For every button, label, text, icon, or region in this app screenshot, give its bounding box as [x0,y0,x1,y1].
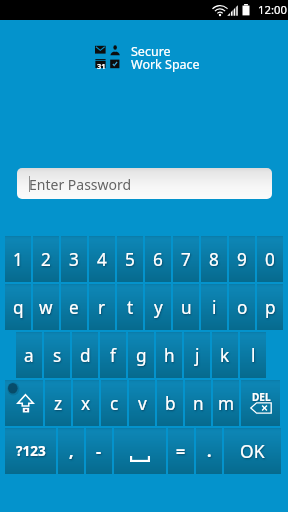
button[interactable]: 0 [257,236,283,282]
staticText: DEL [252,390,271,404]
staticText: j [195,344,200,367]
button[interactable]: r [89,284,115,330]
staticText: c [110,392,119,415]
button[interactable]: 3 [61,236,87,282]
staticText: z [54,392,63,415]
staticText: u [181,296,192,319]
staticText: 0 [265,248,275,271]
button[interactable]: l [240,332,266,378]
button[interactable]: Delete [241,380,280,426]
button[interactable]: 9 [229,236,255,282]
button[interactable]: d [72,332,98,378]
button[interactable]: e [61,284,87,330]
staticText: = [176,440,186,462]
staticText: m [218,392,235,415]
staticText: 7 [181,248,191,271]
staticText: . [207,440,212,462]
staticText: f [110,344,116,367]
button[interactable]: h [156,332,182,378]
button[interactable]: t [117,284,143,330]
staticText: 12:00 [258,2,287,17]
staticText: 3 [69,248,79,271]
staticText: 9 [237,248,247,271]
button[interactable]: 2 [33,236,59,282]
staticText: x [81,392,91,415]
staticText: 6 [153,248,163,271]
button[interactable]: f [100,332,126,378]
button[interactable]: Space [114,428,166,474]
button[interactable]: b [157,380,183,426]
button[interactable]: i [201,284,227,330]
staticText: , [69,440,74,462]
staticText: p [265,296,276,319]
staticText: s [53,344,62,367]
button[interactable]: q [5,284,31,330]
staticText: Secure [131,43,171,60]
staticText: t [127,296,134,319]
staticText: q [13,296,24,319]
staticText: Work Space [131,56,200,73]
button[interactable]: z [45,380,71,426]
button[interactable]: k [212,332,238,378]
button[interactable]: j [184,332,210,378]
staticText: ?123 [16,442,46,460]
button[interactable]: = [168,428,194,474]
button[interactable]: 7 [173,236,199,282]
staticText: 2 [41,248,51,271]
staticText: 8 [209,248,219,271]
button[interactable]: m [213,380,239,426]
staticText: d [80,344,91,367]
staticText: OK [240,439,265,463]
staticText: y [154,296,163,319]
button[interactable]: 8 [201,236,227,282]
staticText: b [165,392,176,415]
staticText: Enter Password [29,175,132,194]
staticText: 31 [97,61,106,71]
button[interactable]: 4 [89,236,115,282]
staticText: l [251,344,256,367]
button[interactable]: c [101,380,127,426]
staticText: o [237,296,248,319]
button[interactable]: - [86,428,112,474]
button[interactable]: a [16,332,42,378]
staticText: 4 [97,248,107,271]
staticText: w [39,296,53,319]
button[interactable]: g [128,332,154,378]
staticText: n [193,392,204,415]
button[interactable]: w [33,284,59,330]
button[interactable]: ?123 [5,428,56,474]
staticText: e [69,296,79,319]
staticText: r [98,296,106,319]
button[interactable]: Enter Password [17,168,272,199]
button[interactable]: 1 [5,236,31,282]
staticText: 5 [125,248,135,271]
button[interactable]: s [44,332,70,378]
button[interactable]: x [73,380,99,426]
button[interactable]: , [58,428,84,474]
button[interactable]: y [145,284,171,330]
button[interactable]: 6 [145,236,171,282]
button[interactable]: n [185,380,211,426]
staticText: a [24,344,34,367]
staticText: v [138,392,147,415]
staticText: h [164,344,175,367]
button[interactable]: u [173,284,199,330]
staticText: k [220,344,230,367]
button[interactable]: o [229,284,255,330]
staticText: 1 [13,248,23,271]
staticText: - [96,440,102,462]
staticText: g [136,344,147,367]
button[interactable]: p [257,284,283,330]
button[interactable]: . [196,428,222,474]
button[interactable]: 5 [117,236,143,282]
staticText: i [212,296,217,319]
button[interactable]: OK [224,428,281,474]
button[interactable]: v [129,380,155,426]
button[interactable]: Shift [5,380,43,426]
